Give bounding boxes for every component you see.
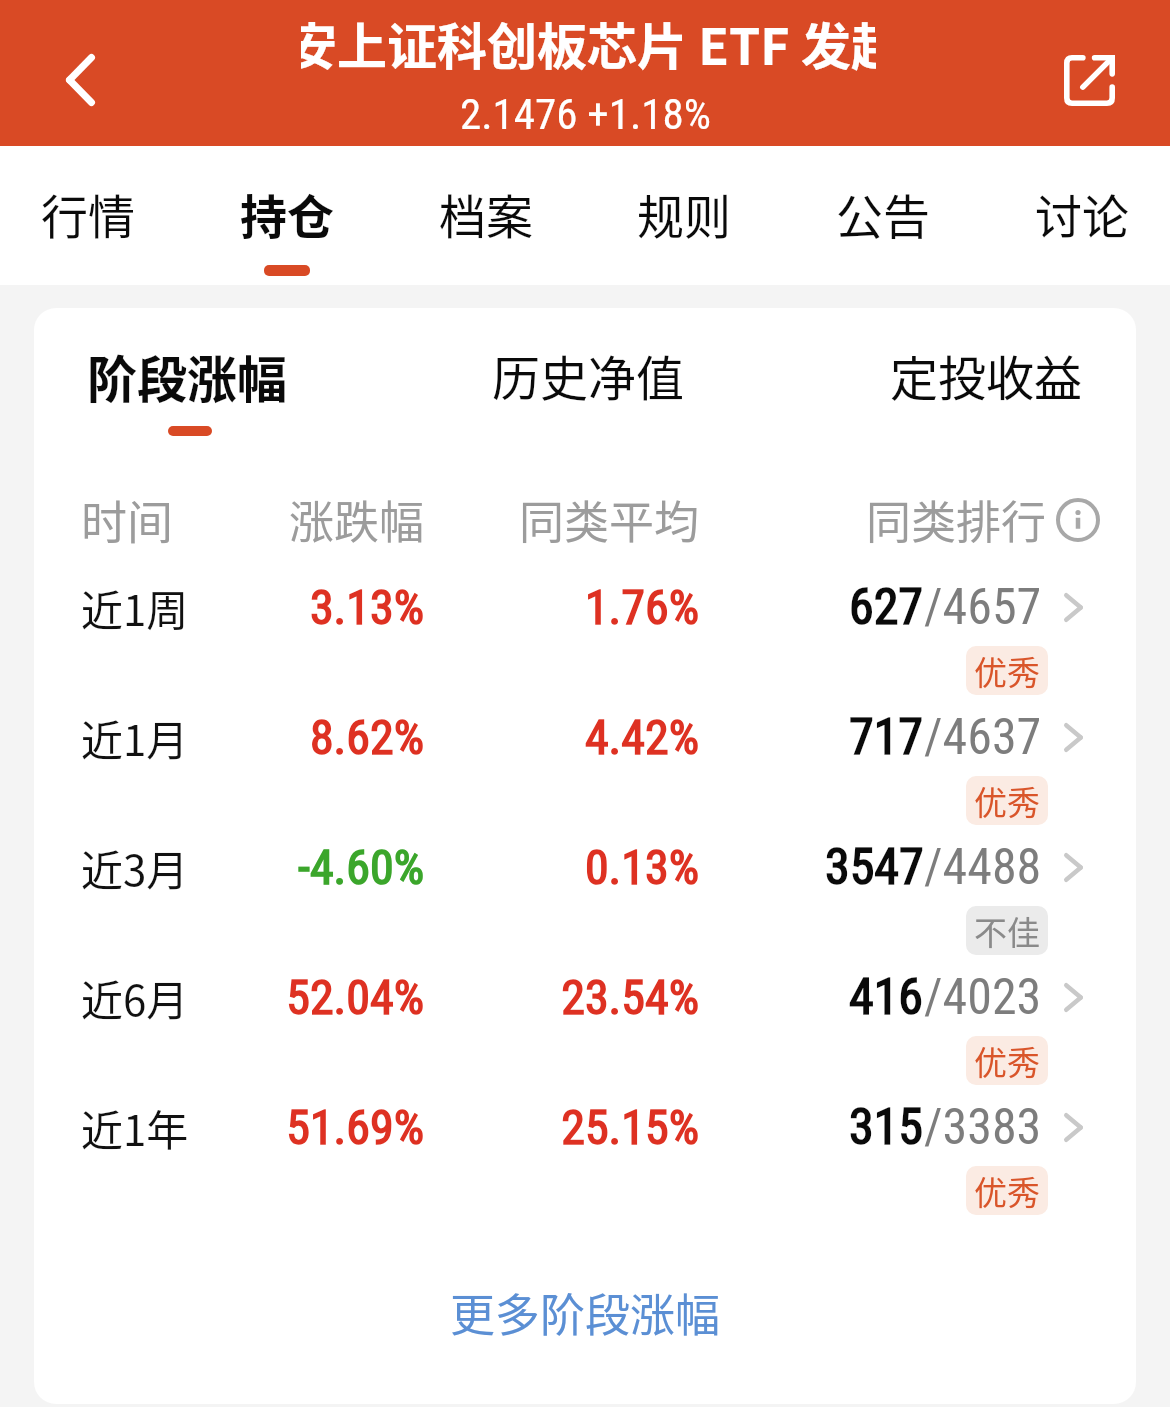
button[interactable]: 公告 xyxy=(836,146,930,285)
staticText: 涨跌幅 xyxy=(232,487,424,552)
button[interactable]: 近1年 xyxy=(34,1078,1136,1208)
staticText: 717 xyxy=(849,708,924,767)
staticText: 优秀 xyxy=(974,1167,1040,1215)
button[interactable]: 讨论 xyxy=(1035,146,1129,285)
staticText: 不佳 xyxy=(974,907,1040,955)
staticText: 安上证科创板芯片 ETF 发起 xyxy=(301,7,876,79)
staticText: 行情 xyxy=(41,179,135,247)
staticText: 历史净值 xyxy=(492,340,685,410)
staticText: 23.54% xyxy=(424,969,699,1025)
staticText: 51.69% xyxy=(232,1099,424,1155)
staticText: 时间 xyxy=(81,486,232,553)
staticText: 近3月 xyxy=(81,837,232,898)
staticText: 同类排行 xyxy=(866,487,1047,552)
staticText: 档案 xyxy=(439,179,533,247)
staticText: 1.76% xyxy=(424,579,699,635)
button[interactable]: 阶段涨幅 xyxy=(87,340,287,436)
button[interactable]: 定投收益 xyxy=(890,340,1083,424)
button[interactable]: Share xyxy=(1034,7,1144,153)
staticText: 持仓 xyxy=(240,179,334,247)
staticText: 更多阶段涨幅 xyxy=(450,1280,721,1345)
button[interactable]: 规则 xyxy=(637,146,731,285)
button[interactable]: 持仓 xyxy=(240,146,334,285)
staticText: 3547 xyxy=(825,838,924,897)
button[interactable]: 更多阶段涨幅 xyxy=(426,1272,745,1353)
button[interactable]: 近6月 xyxy=(34,948,1136,1078)
staticText: 627 xyxy=(849,578,924,637)
staticText: /4637 xyxy=(924,708,1042,767)
staticText: /3383 xyxy=(924,1098,1042,1157)
staticText: 阶段涨幅 xyxy=(87,340,287,412)
button[interactable]: 近1月 xyxy=(34,688,1136,818)
staticText: 优秀 xyxy=(974,1037,1040,1085)
staticText: 优秀 xyxy=(974,647,1040,695)
staticText: 同类平均 xyxy=(424,487,699,552)
staticText: 近1年 xyxy=(81,1097,232,1158)
button[interactable]: 历史净值 xyxy=(492,340,685,424)
staticText: 8.62% xyxy=(232,709,424,765)
staticText: 近1月 xyxy=(81,707,232,768)
button[interactable]: 近3月 xyxy=(34,818,1136,948)
staticText: 315 xyxy=(849,1098,924,1157)
staticText: 52.04% xyxy=(232,969,424,1025)
staticText: 公告 xyxy=(836,179,930,247)
staticText: 定投收益 xyxy=(890,340,1083,410)
staticText: 416 xyxy=(849,968,924,1027)
button[interactable]: 行情 xyxy=(41,146,135,285)
staticText: 近6月 xyxy=(81,967,232,1028)
staticText: 2.1476 +1.18% xyxy=(460,89,711,139)
staticText: 优秀 xyxy=(974,777,1040,825)
staticText: /4657 xyxy=(924,578,1042,637)
staticText: 近1周 xyxy=(81,577,232,638)
staticText: 3.13% xyxy=(232,579,424,635)
staticText: 讨论 xyxy=(1035,179,1129,247)
button[interactable]: 近1周 xyxy=(34,558,1136,688)
staticText: 0.13% xyxy=(424,839,699,895)
button[interactable]: 档案 xyxy=(439,146,533,285)
staticText: /4023 xyxy=(924,968,1042,1027)
button[interactable]: Back xyxy=(0,7,160,153)
staticText: -4.60% xyxy=(232,839,424,895)
staticText: /4488 xyxy=(924,838,1042,897)
staticText: 规则 xyxy=(637,179,731,247)
staticText: 25.15% xyxy=(424,1099,699,1155)
staticText: 4.42% xyxy=(424,709,699,765)
